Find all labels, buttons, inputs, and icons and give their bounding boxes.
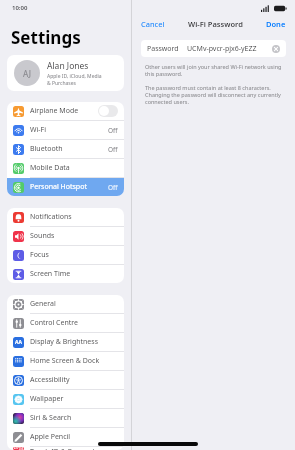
button[interactable]: Notifications (7, 208, 124, 226)
staticText: Control Centre (30, 318, 118, 328)
staticText: Other users will join your shared Wi-Fi … (145, 63, 282, 77)
button[interactable]: AJ (7, 55, 124, 91)
button[interactable]: Home Screen & Dock (7, 352, 124, 370)
button[interactable]: Control Centre (7, 314, 124, 332)
staticText: UCMv-pvcr-pjx6-yEZZ (187, 44, 272, 54)
button[interactable]: Cancel (141, 19, 165, 29)
button[interactable]: Focus (7, 246, 124, 264)
staticText: Apple Pencil (30, 432, 118, 442)
staticText: 10:00 (12, 4, 28, 12)
button[interactable]: AA (7, 333, 124, 351)
button[interactable]: Screen Time (7, 265, 124, 283)
staticText: Screen Time (30, 269, 118, 279)
button[interactable]: Siri & Search (7, 409, 124, 427)
button[interactable]: Password (141, 40, 286, 57)
button[interactable]: Apple Pencil (7, 428, 124, 446)
staticText: Cancel (141, 19, 165, 29)
staticText: Sounds (30, 231, 118, 241)
staticText: Bluetooth (30, 144, 108, 154)
button[interactable]: General (7, 295, 124, 313)
staticText: AA (15, 339, 22, 346)
staticText: Mobile Data (30, 163, 118, 173)
button[interactable]: Sounds (7, 227, 124, 245)
button[interactable]: Airplane Mode (7, 102, 124, 120)
staticText: Siri & Search (30, 413, 118, 423)
button[interactable]: Bluetooth (7, 140, 124, 158)
staticText: Wi-Fi (30, 125, 108, 135)
button[interactable]: Done (266, 19, 286, 29)
staticText: Apple ID, iCloud, Media & Purchases (47, 73, 102, 87)
button[interactable]: Touch ID & Passcode (7, 447, 124, 450)
staticText: Notifications (30, 212, 118, 222)
staticText: Home Screen & Dock (30, 356, 118, 366)
staticText: Focus (30, 250, 118, 260)
staticText: Accessibility (30, 375, 118, 385)
staticText: Off (108, 183, 118, 192)
button[interactable]: Wi-Fi (7, 121, 124, 139)
staticText: The password must contain at least 8 cha… (145, 84, 281, 105)
staticText: Off (108, 145, 118, 154)
staticText: Off (108, 126, 118, 135)
button[interactable]: Accessibility (7, 371, 124, 389)
staticText: Personal Hotspot (30, 182, 108, 192)
button[interactable]: Airplane Mode toggle (98, 105, 118, 117)
button[interactable]: Clear text (272, 45, 280, 53)
button[interactable]: Mobile Data (7, 159, 124, 177)
staticText: Wi-Fi Password (165, 19, 266, 29)
staticText: General (30, 299, 118, 309)
button[interactable]: Personal Hotspot (7, 178, 124, 196)
staticText: Alan Jones (47, 60, 89, 72)
staticText: Settings (11, 26, 81, 49)
staticText: AJ (23, 68, 31, 79)
staticText: Touch ID & Passcode (30, 447, 118, 450)
button[interactable]: Wallpaper (7, 390, 124, 408)
staticText: Done (266, 19, 286, 29)
staticText: Wallpaper (30, 394, 118, 404)
staticText: Airplane Mode (30, 106, 98, 116)
staticText: Display & Brightness (30, 337, 118, 347)
staticText: Password (147, 44, 179, 54)
